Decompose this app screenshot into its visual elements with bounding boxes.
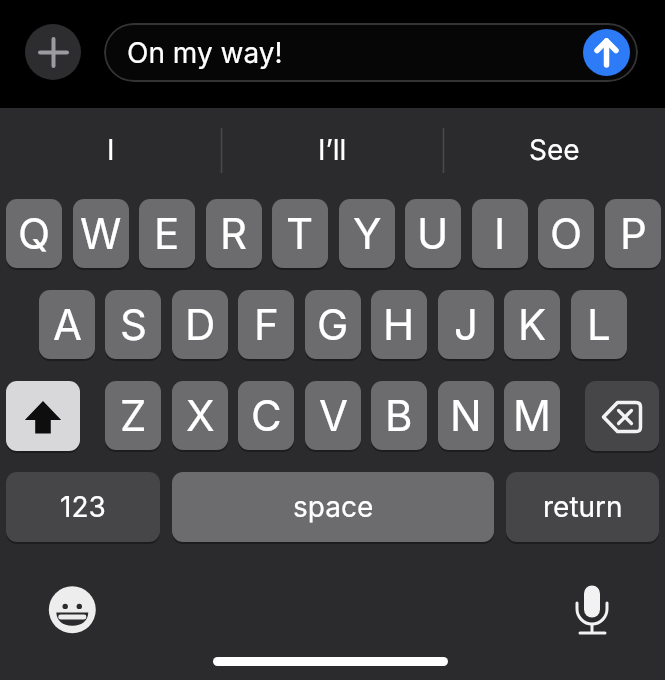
button[interactable] bbox=[25, 24, 81, 80]
staticText: P bbox=[620, 208, 647, 259]
button[interactable]: I’ll bbox=[222, 110, 443, 190]
staticText: W bbox=[80, 208, 122, 259]
staticText: J bbox=[454, 299, 478, 350]
staticText: K bbox=[518, 299, 547, 350]
button[interactable]: J bbox=[438, 290, 494, 359]
button[interactable]: R bbox=[206, 199, 262, 268]
staticText: T bbox=[286, 208, 314, 259]
button[interactable]: K bbox=[504, 290, 560, 359]
staticText: V bbox=[319, 390, 348, 441]
staticText: U bbox=[417, 208, 449, 259]
button[interactable]: T bbox=[272, 199, 328, 268]
button[interactable]: E bbox=[139, 199, 195, 268]
button[interactable]: return bbox=[506, 472, 659, 542]
button[interactable]: W bbox=[73, 199, 129, 268]
button[interactable]: Y bbox=[339, 199, 395, 268]
button[interactable]: V bbox=[305, 381, 361, 450]
button[interactable] bbox=[585, 381, 659, 451]
button[interactable]: G bbox=[305, 290, 361, 359]
staticText: Q bbox=[18, 208, 51, 259]
button[interactable]: X bbox=[172, 381, 228, 450]
staticText: O bbox=[550, 208, 583, 259]
staticText: Z bbox=[120, 390, 147, 441]
staticText: A bbox=[53, 299, 82, 350]
button[interactable]: Q bbox=[6, 199, 62, 268]
button[interactable]: U bbox=[405, 199, 461, 268]
button[interactable]: 123 bbox=[6, 472, 160, 542]
staticText: space bbox=[293, 490, 374, 524]
staticText: I’ll bbox=[318, 133, 347, 167]
button[interactable] bbox=[583, 29, 630, 76]
staticText: X bbox=[186, 390, 215, 441]
staticText: G bbox=[317, 299, 349, 350]
button[interactable]: A bbox=[39, 290, 95, 359]
button[interactable]: Z bbox=[105, 381, 161, 450]
button[interactable]: D bbox=[172, 290, 228, 359]
staticText: D bbox=[185, 299, 216, 350]
staticText: I bbox=[107, 133, 115, 167]
staticText: On my way! bbox=[127, 36, 283, 70]
staticText: B bbox=[385, 390, 413, 441]
staticText: M bbox=[513, 390, 551, 441]
staticText: R bbox=[220, 208, 248, 259]
button[interactable]: H bbox=[371, 290, 427, 359]
staticText: 123 bbox=[60, 490, 106, 524]
button[interactable]: S bbox=[105, 290, 161, 359]
button[interactable]: B bbox=[371, 381, 427, 450]
staticText: See bbox=[529, 133, 580, 167]
button[interactable]: N bbox=[438, 381, 494, 450]
button[interactable]: P bbox=[605, 199, 661, 268]
button[interactable]: See bbox=[443, 110, 665, 190]
button[interactable]: On my way! bbox=[104, 23, 638, 82]
button[interactable]: I bbox=[0, 110, 221, 190]
button[interactable]: space bbox=[172, 472, 494, 542]
staticText: S bbox=[120, 299, 147, 350]
staticText: E bbox=[154, 208, 180, 259]
button[interactable]: M bbox=[504, 381, 560, 450]
button[interactable] bbox=[6, 381, 80, 451]
staticText: return bbox=[543, 490, 623, 524]
button[interactable]: I bbox=[472, 199, 528, 268]
staticText: Y bbox=[353, 208, 382, 259]
button[interactable]: L bbox=[571, 290, 627, 359]
staticText: N bbox=[450, 390, 482, 441]
staticText: L bbox=[587, 299, 611, 350]
staticText: H bbox=[383, 299, 415, 350]
staticText: F bbox=[254, 299, 279, 350]
staticText: I bbox=[494, 208, 506, 259]
button[interactable]: O bbox=[538, 199, 594, 268]
button[interactable]: C bbox=[238, 381, 294, 450]
staticText: C bbox=[251, 390, 282, 441]
button[interactable]: F bbox=[238, 290, 294, 359]
